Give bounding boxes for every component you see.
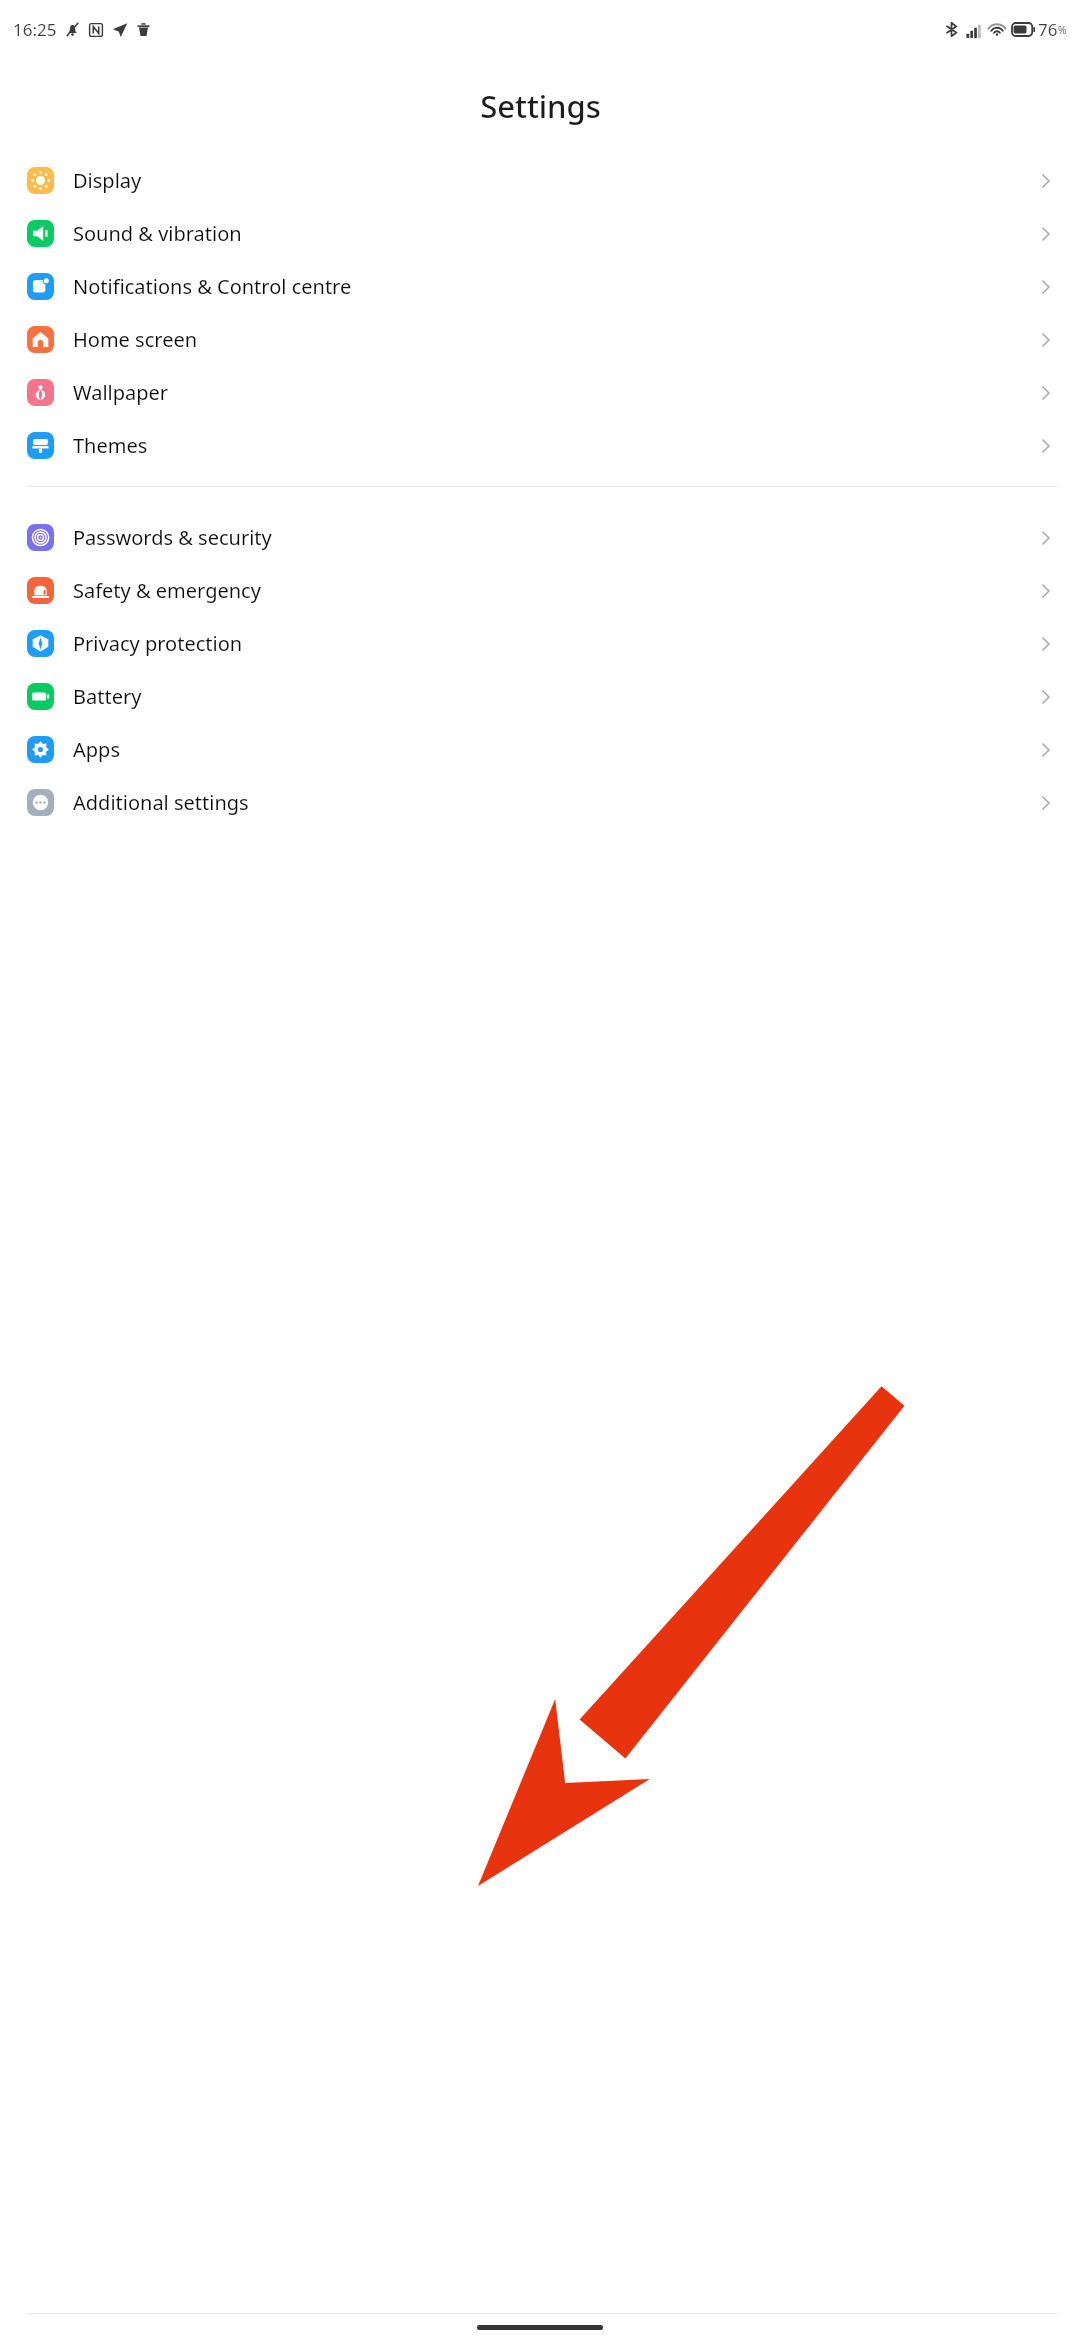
staticText: 16:25 xyxy=(13,18,57,41)
button[interactable]: Sound & vibration xyxy=(0,207,1080,260)
button[interactable]: Home screen xyxy=(0,313,1080,366)
staticText: 76 xyxy=(1038,18,1058,41)
staticText: Additional settings xyxy=(73,789,1037,816)
button[interactable]: Notifications & Control centre xyxy=(0,260,1080,313)
button[interactable]: Display xyxy=(0,154,1080,207)
staticText: Themes xyxy=(73,432,1037,459)
staticText: Settings xyxy=(480,85,601,127)
button[interactable]: Additional settings xyxy=(0,776,1080,829)
staticText: Privacy protection xyxy=(73,630,1037,657)
button[interactable]: Wallpaper xyxy=(0,366,1080,419)
button[interactable]: Passwords & security xyxy=(0,511,1080,564)
button[interactable]: Safety & emergency xyxy=(0,564,1080,617)
button[interactable]: Apps xyxy=(0,723,1080,776)
button[interactable]: Privacy protection xyxy=(0,617,1080,670)
staticText: Home screen xyxy=(73,326,1037,353)
staticText: Safety & emergency xyxy=(73,577,1037,604)
staticText: % xyxy=(1058,23,1067,37)
button[interactable]: Themes xyxy=(0,419,1080,472)
staticText: Battery xyxy=(73,683,1037,710)
staticText: Apps xyxy=(73,736,1037,763)
staticText: Sound & vibration xyxy=(73,220,1037,247)
staticText: Passwords & security xyxy=(73,524,1037,551)
staticText: Wallpaper xyxy=(73,379,1037,406)
staticText: Notifications & Control centre xyxy=(73,273,1037,300)
button[interactable]: Battery xyxy=(0,670,1080,723)
staticText: Display xyxy=(73,167,1037,194)
